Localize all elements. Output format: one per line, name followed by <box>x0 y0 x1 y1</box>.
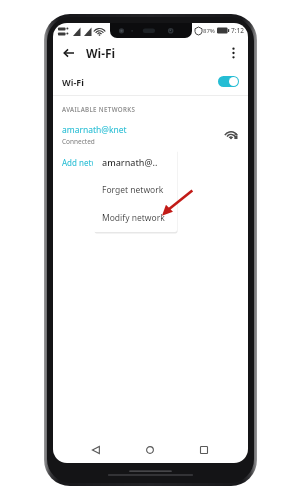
button[interactable]: amarnath@.. <box>93 148 177 176</box>
button[interactable]: Wi-Fi <box>53 68 248 95</box>
staticText: AVAILABLE NETWORKS <box>62 105 136 113</box>
button[interactable]: More options <box>223 43 243 63</box>
button[interactable]: Home <box>140 440 160 460</box>
staticText: Connected <box>62 137 95 146</box>
staticText: 87% <box>203 27 215 35</box>
button[interactable]: Forget network <box>93 176 177 204</box>
staticText: 7:12 <box>231 26 244 35</box>
staticText: amarnath@knet <box>62 124 127 136</box>
staticText: amarnath@.. <box>102 156 158 168</box>
button[interactable]: amarnath@knet <box>53 122 248 148</box>
staticText: Add network <box>62 157 111 168</box>
button[interactable]: Back <box>58 42 80 64</box>
staticText: Forget network <box>102 184 164 196</box>
staticText: Wi-Fi <box>62 76 84 88</box>
button[interactable]: Modify network <box>93 204 177 232</box>
staticText: Wi-Fi <box>86 45 116 61</box>
button[interactable]: Back <box>86 440 106 460</box>
staticText: Modify network <box>102 212 165 224</box>
button[interactable]: Add network <box>53 154 248 170</box>
button[interactable]: Recents <box>194 440 214 460</box>
